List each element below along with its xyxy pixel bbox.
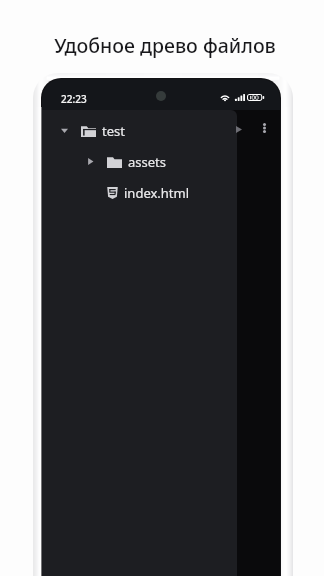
staticText: Удобное древо файлов [3, 32, 324, 59]
button[interactable]: test [42, 115, 237, 146]
staticText: test [102, 122, 125, 140]
staticText: 22:23 [61, 92, 87, 106]
staticText: index.html [124, 184, 190, 202]
button[interactable]: index.html [42, 177, 237, 208]
button[interactable]: More options [253, 117, 275, 139]
button[interactable]: Expand panel [228, 118, 250, 140]
staticText: assets [128, 153, 166, 171]
button[interactable]: assets [42, 146, 237, 177]
